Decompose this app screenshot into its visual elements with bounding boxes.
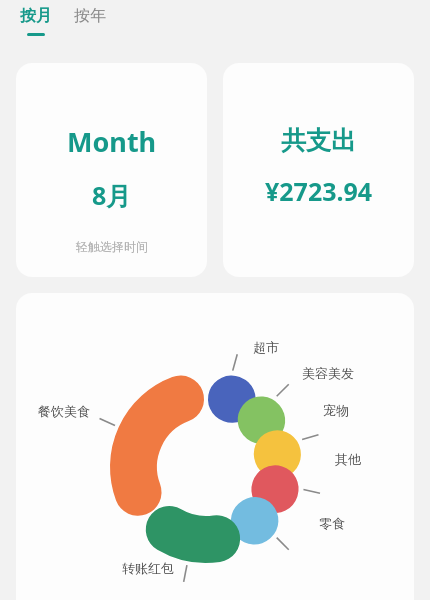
button[interactable]: 共支出 <box>223 63 414 277</box>
staticText: 餐饮美食 <box>38 403 90 419</box>
staticText: 零食 <box>319 515 345 531</box>
staticText: 按年 <box>74 6 106 26</box>
staticText: 美容美发 <box>302 365 354 381</box>
button[interactable]: Month <box>16 63 207 277</box>
button[interactable]: 按年 <box>70 0 110 32</box>
staticText: 按月 <box>20 6 52 26</box>
staticText: 宠物 <box>323 402 349 418</box>
staticText: 8月 <box>92 178 132 212</box>
staticText: 共支出 <box>281 125 356 156</box>
staticText: 轻触选择时间 <box>76 239 148 254</box>
staticText: 转账红包 <box>122 560 174 576</box>
staticText: ¥2723.94 <box>265 174 373 208</box>
button[interactable]: 支出分类饼图 <box>16 293 414 600</box>
staticText: 其他 <box>335 451 361 467</box>
staticText: 超市 <box>253 339 279 355</box>
staticText: Month <box>67 123 157 160</box>
button[interactable]: 按月 <box>16 0 56 42</box>
